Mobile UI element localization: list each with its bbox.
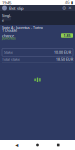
staticText: 19:45 xyxy=(2,0,11,5)
staticText: Single xyxy=(2,13,11,23)
staticText: 4G xyxy=(65,0,70,5)
staticText: 10.00 EUR xyxy=(54,50,71,55)
button[interactable]: Close xyxy=(67,5,73,11)
staticText: Bet slip xyxy=(9,5,24,11)
staticText: ⚙ xyxy=(62,5,66,11)
button[interactable]: Home xyxy=(33,141,41,149)
button[interactable]: Recents xyxy=(54,141,62,149)
staticText: 18.50 EUR xyxy=(56,57,73,62)
button[interactable]: Single xyxy=(2,15,11,20)
button[interactable]: Back xyxy=(13,141,21,149)
staticText: 1 Double chance xyxy=(2,28,17,38)
staticText: Total stake xyxy=(2,57,20,62)
staticText: ◀ xyxy=(15,143,18,147)
staticText: Stake xyxy=(4,50,13,55)
button[interactable]: Settings xyxy=(61,5,67,11)
staticText: 1.85 xyxy=(63,33,70,38)
staticText: Juventus xyxy=(2,35,16,40)
staticText: ▮ xyxy=(71,0,73,5)
staticText: ✕ xyxy=(68,5,72,11)
staticText: Serie A · Juventus - Torino xyxy=(2,25,43,30)
